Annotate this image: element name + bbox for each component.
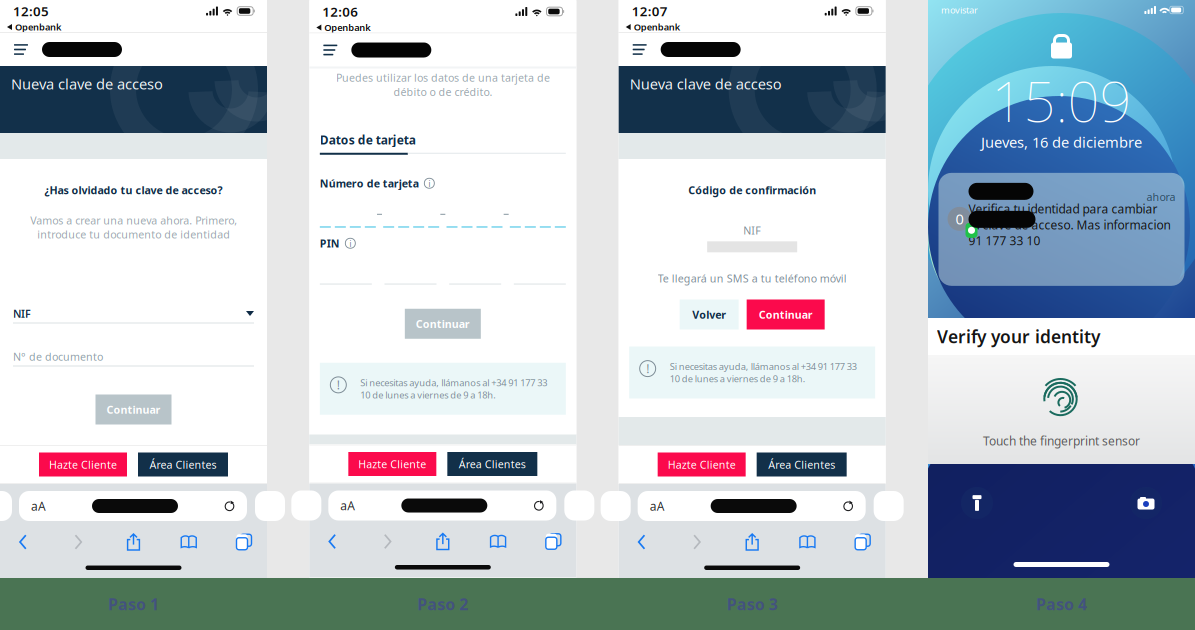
button[interactable]: Volver (680, 299, 739, 329)
staticText: ¿Has olvidado tu clave de acceso? (44, 183, 222, 197)
button[interactable]: Back (310, 529, 354, 553)
staticText: Datos de tarjeta (320, 132, 416, 148)
staticText: Si necesitas ayuda, llámanos al +34 91 1… (360, 376, 547, 401)
staticText: Continuar (106, 402, 160, 417)
staticText: Te llegará un SMS a tu teléfono móvil (658, 271, 847, 285)
button[interactable]: Tabs (222, 530, 266, 554)
staticText: Verify your identity (937, 325, 1100, 348)
staticText: 12:06 (322, 3, 358, 20)
button[interactable]: Continuar (95, 394, 171, 424)
staticText: Si necesitas ayuda, llámanos al +34 91 1… (670, 360, 857, 385)
staticText: Puedes utilizar los datos de una tarjeta… (336, 70, 550, 99)
staticText: Openbank (634, 21, 680, 33)
button[interactable]: Share (421, 529, 465, 553)
staticText: Hazte Cliente (668, 457, 736, 472)
button[interactable]: Tabs (841, 530, 885, 554)
staticText: Continuar (759, 307, 813, 322)
staticText: Área Clientes (459, 457, 526, 471)
staticText: 15:09 (991, 63, 1131, 137)
button[interactable]: Share (111, 530, 155, 554)
staticText: Código de confirmación (688, 183, 816, 197)
button[interactable]: Back (1, 530, 45, 554)
button[interactable]: Forward (56, 530, 100, 554)
staticText: Continuar (416, 317, 470, 331)
button[interactable]: Forward (366, 529, 410, 553)
button[interactable]: Hazte Cliente (658, 452, 746, 476)
staticText: Verifica tu identidad para cambiar tu cl… (968, 201, 1170, 249)
staticText: Touch the fingerprint sensor (983, 433, 1140, 449)
staticText: Volver (692, 307, 726, 322)
staticText: Número de tarjeta (320, 176, 419, 190)
staticText: Área Clientes (149, 457, 216, 472)
button[interactable]: Menu (8, 38, 34, 60)
staticText: Openbank (15, 21, 61, 33)
button[interactable]: Bookmarks (785, 530, 829, 554)
button[interactable]: Hazte Cliente (39, 452, 127, 476)
staticText: i (349, 237, 351, 249)
staticText: Vamos a crear una nueva ahora. Primero, … (30, 213, 237, 241)
button[interactable]: Share (730, 530, 774, 554)
staticText: Openbank (324, 21, 370, 34)
button[interactable]: Menu (627, 38, 653, 60)
staticText: Paso 4 (1036, 593, 1087, 615)
button[interactable]: Menu (317, 39, 343, 61)
staticText: Paso 1 (108, 593, 159, 615)
staticText: Paso 3 (727, 593, 778, 615)
staticText: 0 (955, 209, 963, 229)
button[interactable]: Área Clientes (138, 452, 228, 476)
staticText: movistar (941, 4, 978, 16)
staticText: N° de documento (13, 349, 103, 364)
staticText: ! (337, 377, 340, 393)
staticText: aA (31, 498, 46, 514)
staticText: 12:05 (13, 2, 49, 20)
button[interactable]: Hazte Cliente (348, 452, 436, 476)
staticText: Área Clientes (768, 457, 835, 472)
staticText: aA (340, 497, 355, 513)
button[interactable]: Tabs (531, 529, 575, 553)
staticText: NIF (743, 223, 761, 237)
button[interactable]: Área Clientes (447, 452, 537, 476)
staticText: 12:07 (632, 2, 668, 20)
staticText: Hazte Cliente (49, 457, 117, 472)
staticText: aA (650, 498, 665, 514)
button[interactable]: Bookmarks (476, 529, 520, 553)
staticText: ahora (1146, 190, 1175, 204)
staticText: i (428, 177, 430, 189)
staticText: Nueva clave de acceso (630, 74, 782, 93)
staticText: PIN (320, 236, 340, 250)
button[interactable]: Flashlight (960, 486, 994, 520)
button[interactable]: Camera (1129, 486, 1163, 520)
staticText: ! (646, 361, 649, 376)
button[interactable]: Back (620, 530, 664, 554)
staticText: Nueva clave de acceso (11, 74, 163, 93)
button[interactable]: Forward (675, 530, 719, 554)
staticText: Jueves, 16 de diciembre (981, 132, 1142, 152)
staticText: NIF (13, 306, 31, 321)
button[interactable]: Bookmarks (167, 530, 211, 554)
staticText: Hazte Cliente (358, 457, 426, 471)
button[interactable]: Continuar (405, 309, 481, 339)
button[interactable]: Área Clientes (757, 452, 847, 476)
button[interactable]: Continuar (747, 299, 825, 329)
staticText: Paso 2 (417, 593, 468, 615)
